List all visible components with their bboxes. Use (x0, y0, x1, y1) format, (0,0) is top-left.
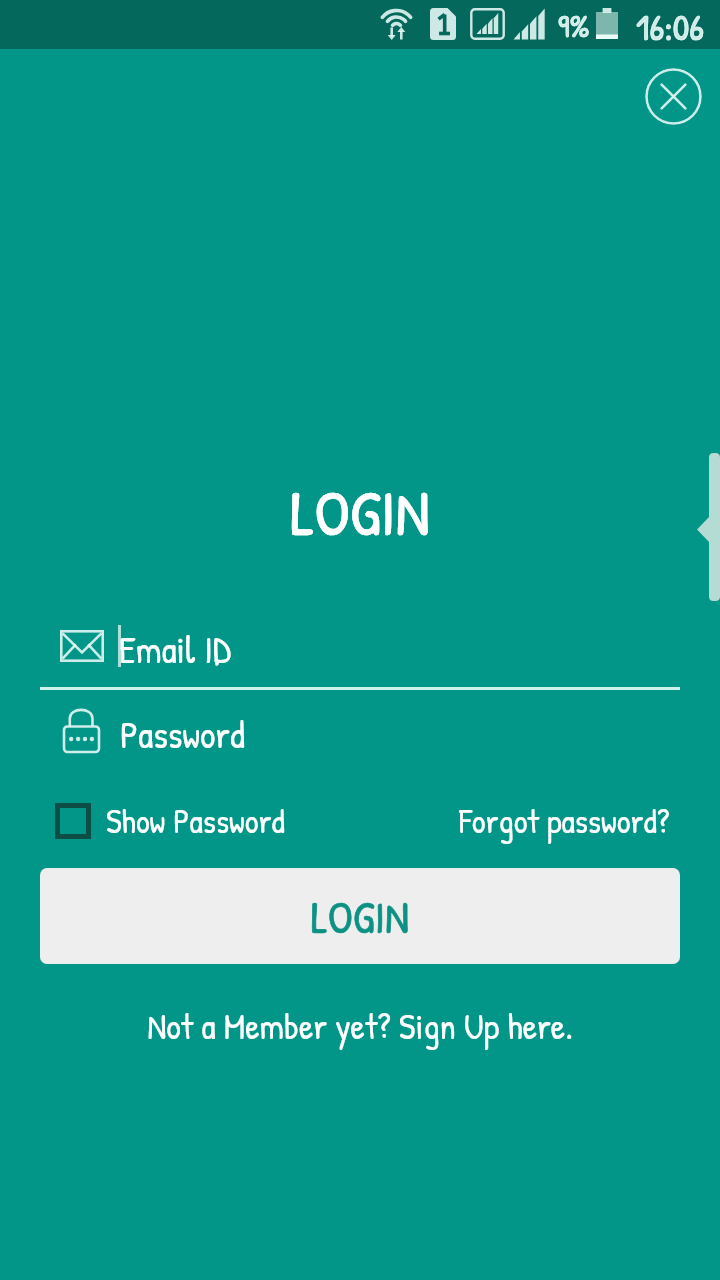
staticText: 16:06 (636, 1, 705, 50)
staticText: LOGIN (0, 468, 720, 555)
staticText: LOGIN (40, 886, 680, 947)
button[interactable]: Show Password (55, 803, 91, 839)
staticText: Show Password (106, 798, 285, 844)
staticText: 9% (558, 5, 590, 47)
staticText: LOGIN (0, 468, 720, 555)
button[interactable]: Forgot password? (459, 798, 670, 844)
button[interactable]: Email ID (40, 614, 680, 690)
staticText: Password (120, 708, 245, 759)
staticText: Not a Member yet? Sign Up here. (0, 1001, 720, 1050)
button[interactable]: Show Password (106, 798, 285, 844)
button[interactable]: Close (645, 68, 702, 125)
staticText: Forgot password? (459, 798, 670, 844)
button[interactable]: Not a Member yet? Sign Up here. (0, 1001, 720, 1050)
staticText: 16:06 (636, 1, 705, 50)
button[interactable]: LOGIN (40, 868, 680, 964)
staticText: Email ID (119, 623, 231, 674)
staticText: LOGIN (40, 886, 680, 947)
staticText: 9% (558, 5, 590, 47)
